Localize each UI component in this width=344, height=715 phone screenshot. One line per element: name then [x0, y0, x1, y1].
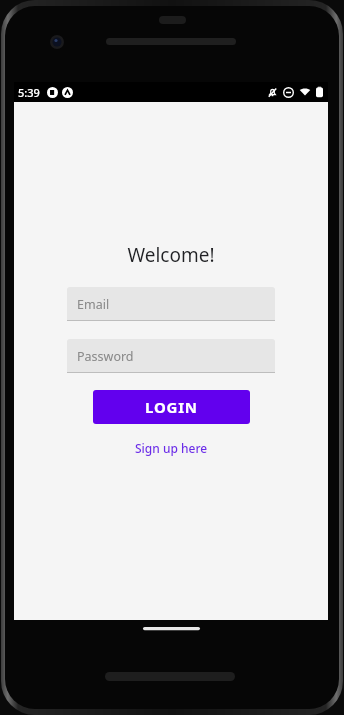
staticText: Welcome!	[127, 242, 215, 268]
staticText: Sign up here	[135, 440, 208, 456]
button[interactable]: Password	[67, 339, 275, 373]
button[interactable]: LOGIN	[93, 390, 250, 424]
staticText: 5:39	[18, 85, 40, 100]
staticText: Email	[77, 296, 110, 313]
staticText: Password	[77, 348, 134, 365]
staticText: LOGIN	[145, 397, 198, 417]
button[interactable]: Sign up here	[129, 437, 214, 459]
button[interactable]: Email	[67, 287, 275, 321]
